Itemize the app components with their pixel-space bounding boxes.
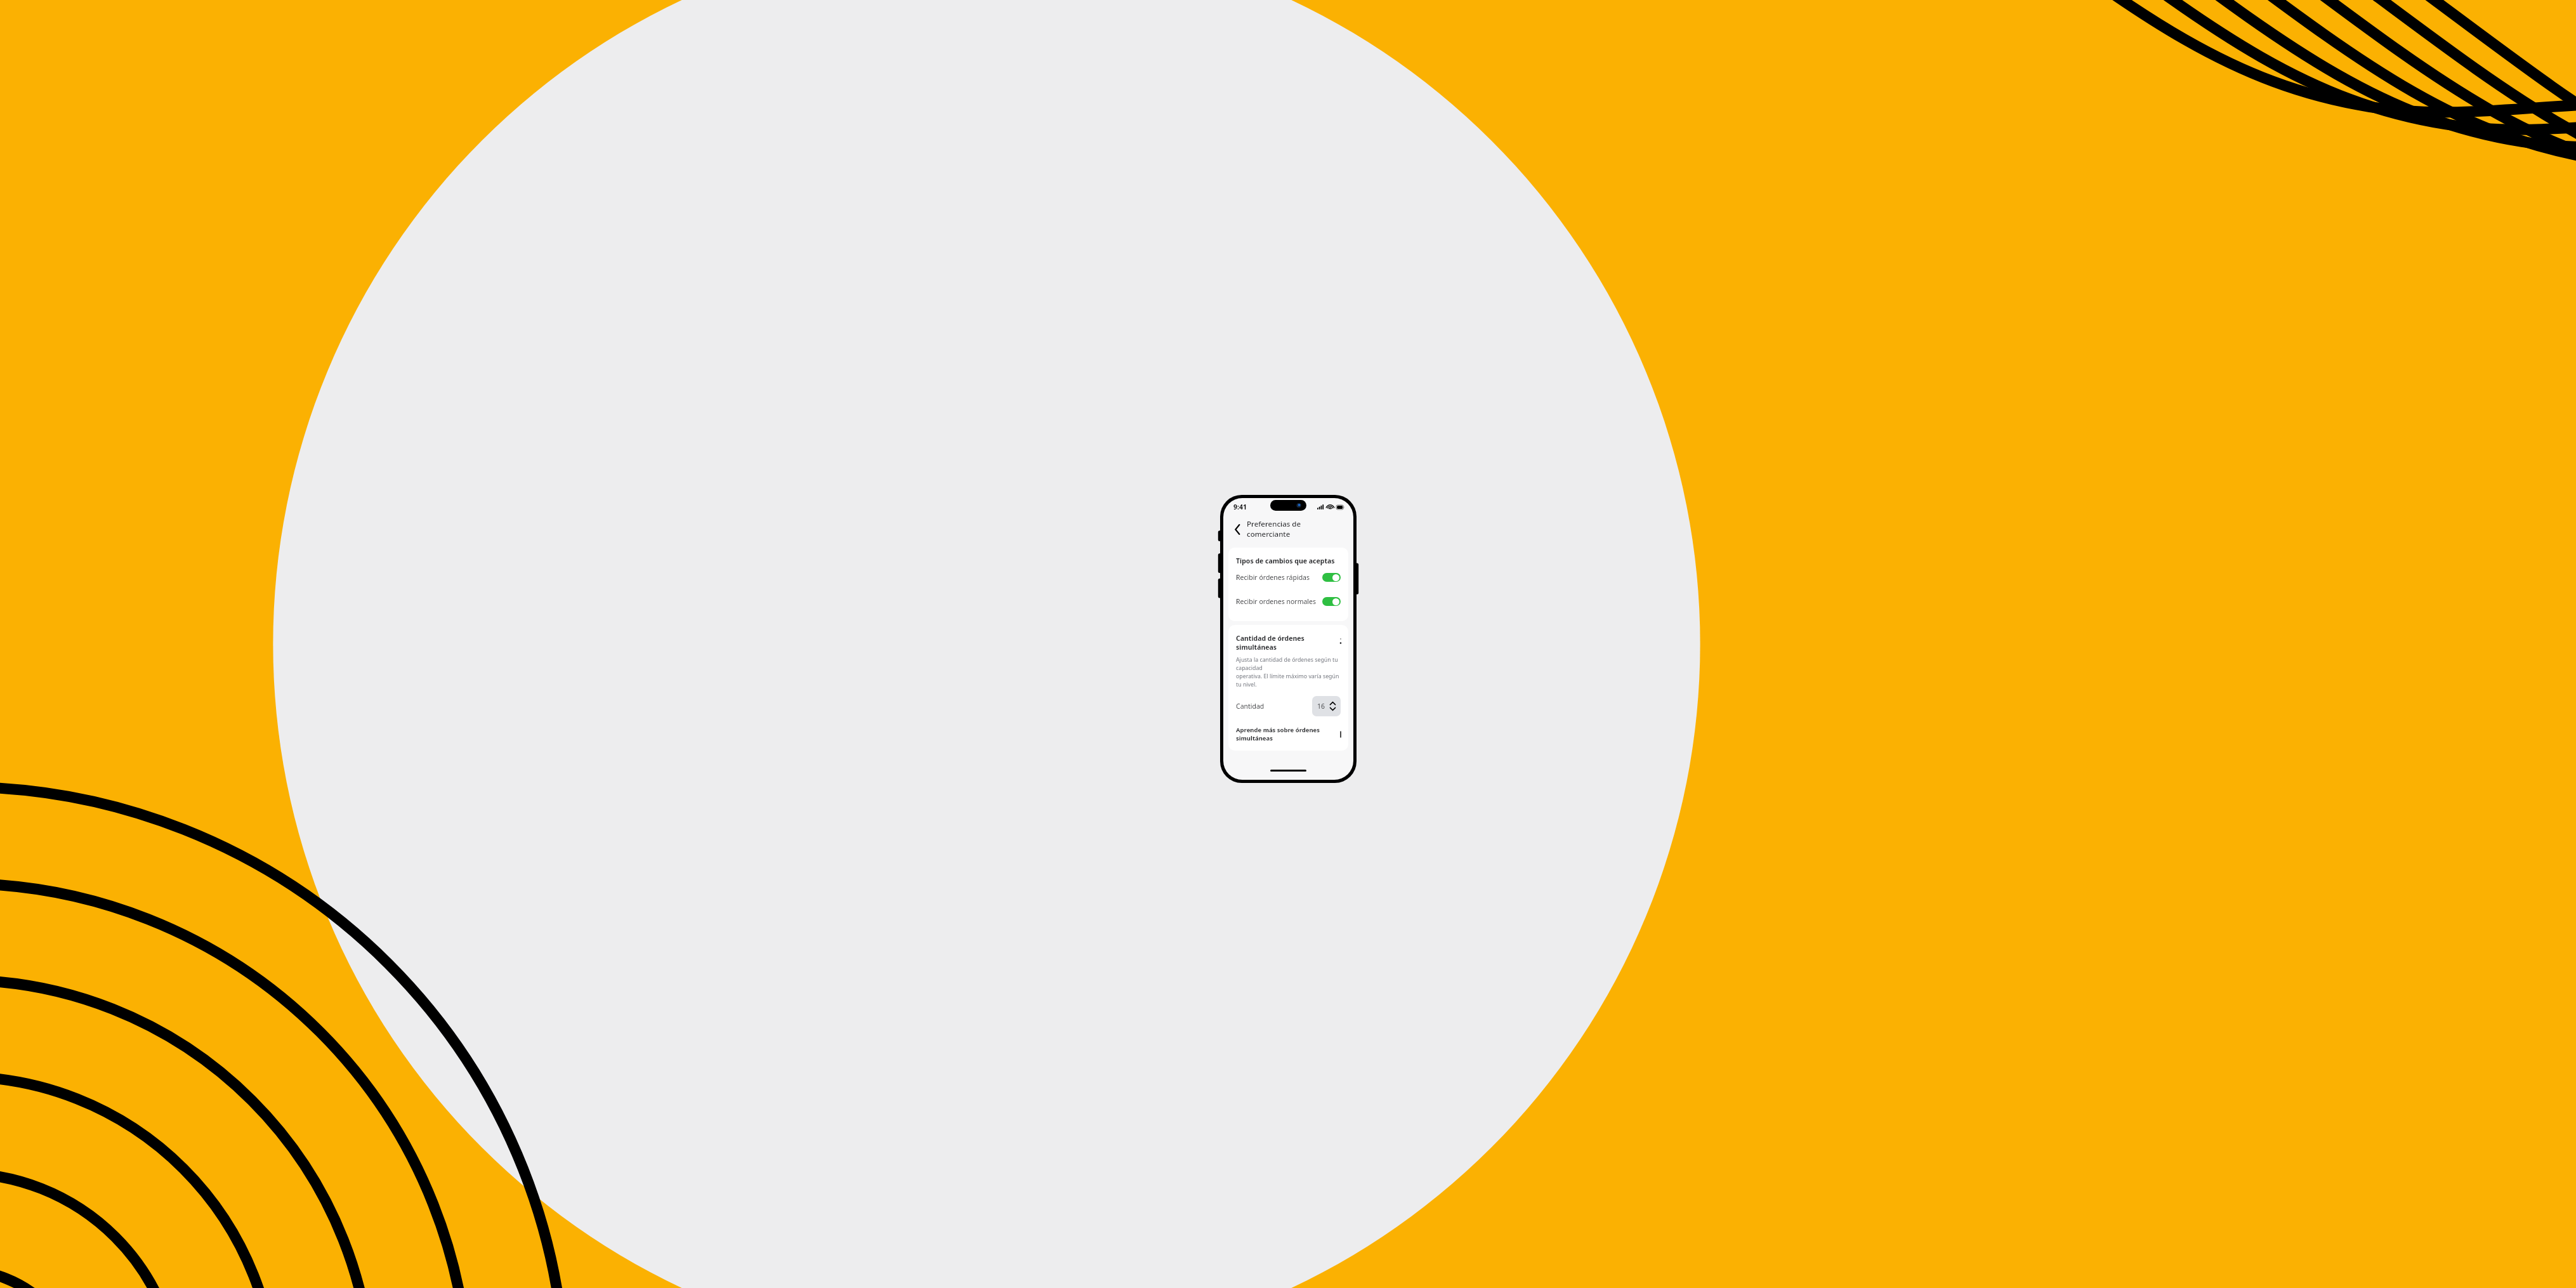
staticText: Preferencias de comerciante (1247, 519, 1346, 539)
staticText: Recibir órdenes rápidas (1236, 573, 1310, 582)
button[interactable]: Recibir ordenes normales (1236, 589, 1341, 614)
staticText: Recibir ordenes normales (1236, 597, 1317, 606)
staticText: 9:41 (1233, 503, 1247, 511)
staticText: Cantidad (1236, 702, 1265, 711)
button[interactable]: 16 (1312, 696, 1341, 716)
staticText: 16 (1317, 702, 1325, 711)
button[interactable]: Recibir órdenes rápidas (1236, 565, 1341, 589)
staticText: Aprende más sobre órdenes simultáneas (1236, 726, 1341, 742)
button[interactable]: Aprende más sobre órdenes simultáneas (1236, 724, 1341, 744)
button[interactable]: Back (1231, 523, 1244, 536)
staticText: Ajusta la cantidad de órdenes según tu c… (1236, 656, 1341, 688)
staticText: Cantidad de órdenes simultáneas (1236, 634, 1341, 652)
staticText: Tipos de cambios que aceptas (1236, 556, 1335, 565)
